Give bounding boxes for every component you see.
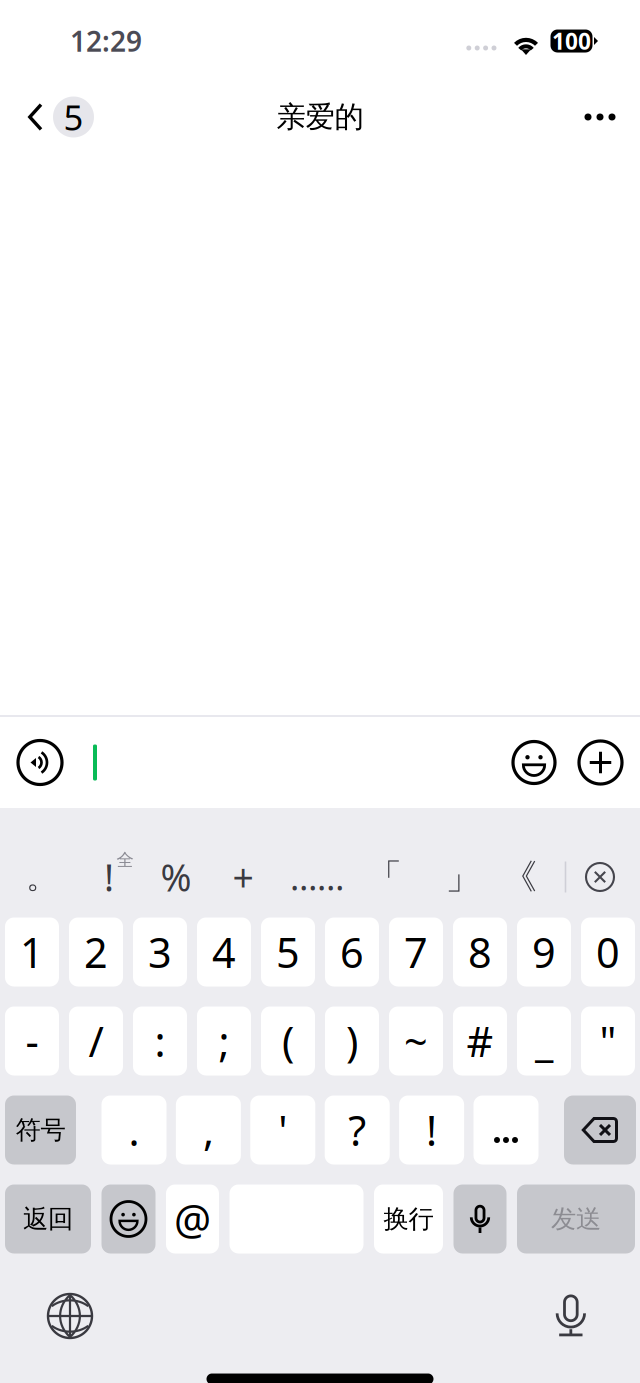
staticText: 9 <box>532 925 556 979</box>
button[interactable]: ; <box>197 1006 251 1075</box>
button[interactable]: @ <box>166 1184 219 1253</box>
staticText: 。 <box>26 857 58 897</box>
button[interactable]: _ <box>517 1006 571 1075</box>
button[interactable]: 9 <box>517 917 571 986</box>
button[interactable]: # <box>453 1006 507 1075</box>
button[interactable]: - <box>5 1006 59 1075</box>
button[interactable]: Delete <box>564 1095 636 1164</box>
staticText: 5 <box>63 94 83 140</box>
staticText: ; <box>218 1014 229 1068</box>
staticText: 5 <box>276 925 300 979</box>
staticText: 亲爱的 <box>276 99 363 135</box>
button[interactable]: 换行 <box>374 1184 443 1253</box>
button[interactable]: 」 <box>428 846 498 908</box>
staticText: 7 <box>404 925 428 979</box>
button[interactable]: Emoji keyboard <box>101 1184 155 1253</box>
staticText: 「 <box>367 856 402 898</box>
button[interactable]: ! <box>76 846 142 908</box>
staticText: 0 <box>596 925 620 979</box>
button[interactable]: 《 <box>488 846 552 908</box>
staticText: 1 <box>20 925 44 979</box>
button[interactable]: 8 <box>453 917 507 986</box>
staticText: @ <box>174 1192 211 1246</box>
staticText: + <box>232 852 253 902</box>
staticText: 12:29 <box>70 22 142 60</box>
button[interactable]: ) <box>325 1006 379 1075</box>
button[interactable]: 「 <box>352 846 418 908</box>
staticText: 100 <box>552 26 591 56</box>
staticText: : <box>154 1014 165 1068</box>
staticText: 」 <box>445 856 480 898</box>
staticText: …… <box>290 854 344 900</box>
button[interactable]: ? <box>325 1095 390 1164</box>
button[interactable]: Emoji <box>513 741 555 783</box>
staticText: % <box>160 852 191 902</box>
button[interactable]: 3 <box>133 917 187 986</box>
staticText: - <box>25 1014 38 1068</box>
button[interactable]: " <box>581 1006 635 1075</box>
staticText: 换行 <box>383 1203 433 1234</box>
button[interactable]: Ellipsis <box>473 1095 538 1164</box>
staticText: ! <box>104 852 114 902</box>
staticText: " <box>599 1014 616 1068</box>
staticText: ' <box>278 1103 287 1157</box>
staticText: ( <box>282 1014 294 1068</box>
button[interactable]: 符号 <box>5 1095 76 1164</box>
button[interactable]: 5 <box>261 917 315 986</box>
button[interactable]: ' <box>250 1095 315 1164</box>
button[interactable]: Clear <box>586 863 614 891</box>
button[interactable]: 6 <box>325 917 379 986</box>
staticText: / <box>88 1014 103 1068</box>
button[interactable]: Dictate <box>453 1184 506 1253</box>
staticText: ~ <box>404 1014 428 1068</box>
button[interactable]: % <box>142 846 210 908</box>
button[interactable]: ! <box>399 1095 464 1164</box>
staticText: ? <box>348 1103 366 1157</box>
button[interactable]: 4 <box>197 917 251 986</box>
button[interactable]: More actions <box>579 741 622 784</box>
staticText: 返回 <box>23 1203 73 1234</box>
button[interactable]: Dictation <box>554 1294 588 1338</box>
button[interactable]: Switch keyboard <box>48 1294 92 1338</box>
staticText: 符号 <box>15 1114 65 1145</box>
staticText: , <box>203 1103 214 1157</box>
button[interactable]: 0 <box>581 917 635 986</box>
button[interactable]: . <box>101 1095 166 1164</box>
staticText: # <box>466 1014 493 1068</box>
button[interactable]: 2 <box>69 917 123 986</box>
button[interactable]: 1 <box>5 917 59 986</box>
staticText: _ <box>535 1014 553 1068</box>
button[interactable]: 。 <box>8 846 76 908</box>
button[interactable]: More <box>569 82 631 152</box>
staticText: 《 <box>502 856 537 898</box>
button[interactable]: + <box>207 846 279 908</box>
button[interactable]: : <box>133 1006 187 1075</box>
staticText: 8 <box>468 925 492 979</box>
button[interactable]: 发送 <box>517 1184 635 1253</box>
button[interactable]: Back <box>0 82 108 152</box>
staticText: 全 <box>116 849 133 871</box>
button[interactable]: , <box>176 1095 241 1164</box>
button[interactable]: ~ <box>389 1006 443 1075</box>
button[interactable]: 7 <box>389 917 443 986</box>
staticText: 4 <box>212 925 236 979</box>
staticText: 2 <box>84 925 108 979</box>
button[interactable]: ( <box>261 1006 315 1075</box>
staticText: 6 <box>340 925 364 979</box>
button[interactable]: Voice input <box>18 740 62 784</box>
staticText: 发送 <box>551 1203 601 1234</box>
staticText: ) <box>346 1014 358 1068</box>
button[interactable]: / <box>69 1006 123 1075</box>
button[interactable]: …… <box>279 846 355 908</box>
staticText: 3 <box>148 925 172 979</box>
staticText: ! <box>426 1103 437 1157</box>
button[interactable]: 返回 <box>5 1184 91 1253</box>
staticText: . <box>128 1103 139 1157</box>
